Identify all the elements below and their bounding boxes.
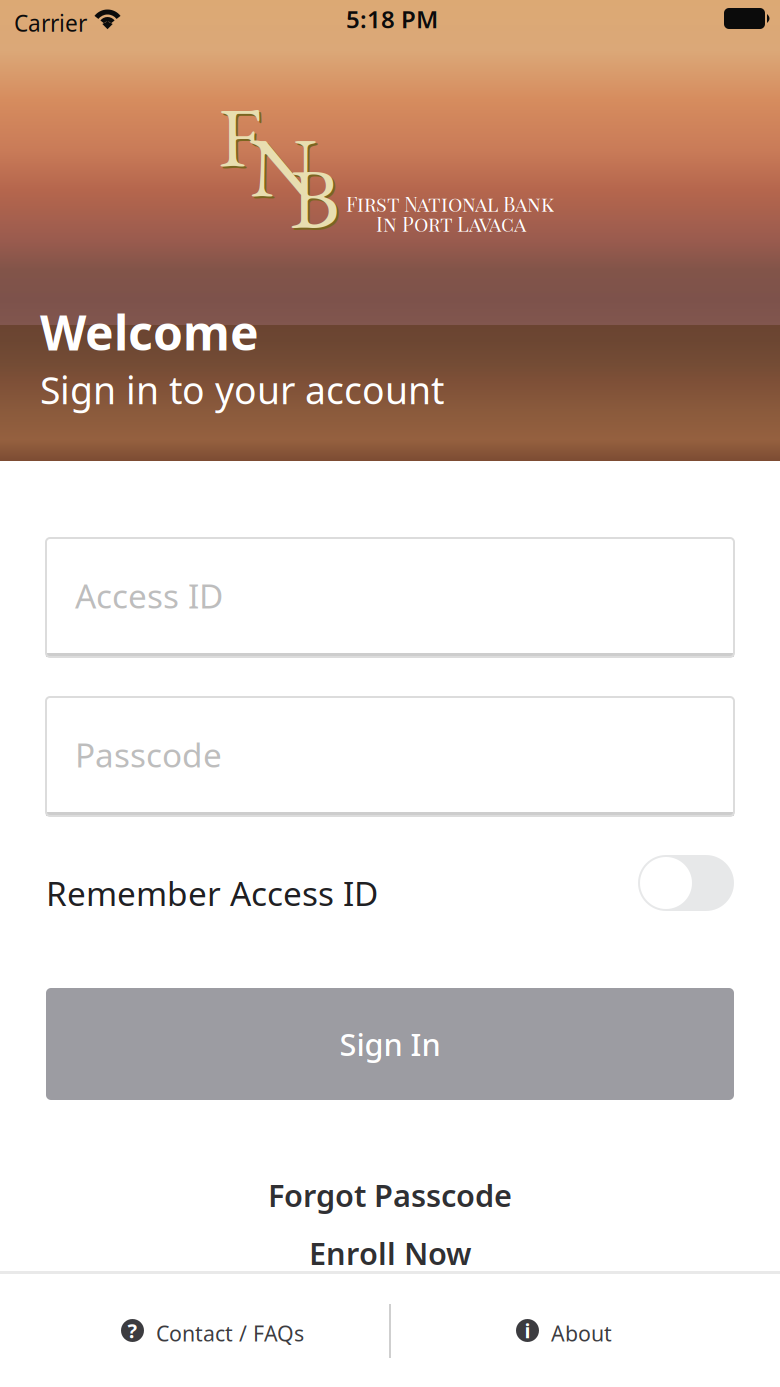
staticText: Carrier [14, 8, 87, 38]
staticText: F [220, 82, 264, 193]
button[interactable]: Forgot Passcode [0, 1170, 780, 1220]
staticText: Contact / FAQs [156, 1319, 304, 1347]
staticText: N [249, 110, 317, 221]
staticText: Passcode [75, 732, 222, 777]
button[interactable]: Access ID [46, 538, 734, 657]
staticText: N [251, 112, 319, 223]
button[interactable]: Remember Access ID [638, 855, 734, 911]
staticText: 5:18 PM [346, 3, 438, 35]
staticText: Welcome [40, 300, 259, 364]
button[interactable]: i [389, 1274, 780, 1387]
staticText: Remember Access ID [46, 871, 378, 915]
staticText: Sign in to your account [40, 365, 444, 415]
staticText: i [524, 1317, 530, 1344]
staticText: Enroll Now [309, 1233, 471, 1273]
staticText: First National Bank [346, 190, 554, 217]
staticText: In Port Lavaca [376, 210, 526, 237]
staticText: B [290, 142, 340, 253]
staticText: Forgot Passcode [268, 1175, 512, 1215]
staticText: F [218, 80, 262, 191]
staticText: About [551, 1319, 612, 1347]
button[interactable]: Enroll Now [0, 1228, 780, 1278]
button[interactable]: ? [0, 1274, 389, 1387]
staticText: Access ID [75, 573, 223, 618]
button[interactable]: Passcode [46, 697, 734, 816]
button[interactable]: Sign In [46, 988, 734, 1100]
staticText: B [292, 144, 342, 255]
staticText: Sign In [339, 1024, 440, 1064]
staticText: ? [127, 1317, 137, 1344]
